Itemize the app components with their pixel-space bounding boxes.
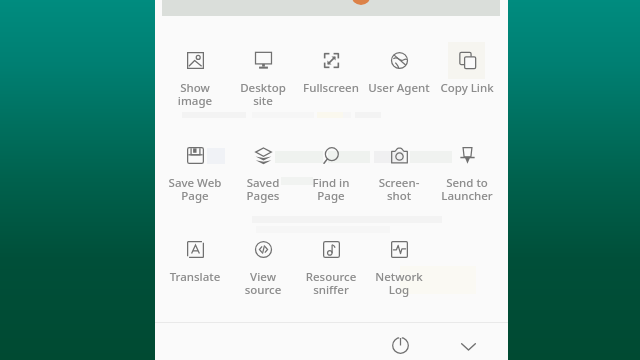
- staticText: Find in Page: [298, 175, 364, 204]
- button[interactable]: User Agent: [366, 42, 432, 96]
- button[interactable]: Resource sniffer: [298, 231, 364, 298]
- button[interactable]: Screen- shot: [366, 137, 432, 204]
- staticText: Network Log: [366, 269, 432, 298]
- staticText: Fullscreen: [298, 80, 364, 96]
- staticText: User Agent: [366, 80, 432, 96]
- button[interactable]: Network Log: [366, 231, 432, 298]
- button[interactable]: Show image: [162, 42, 228, 109]
- button[interactable]: Find in Page: [298, 137, 364, 204]
- staticText: Send to Launcher: [434, 175, 500, 204]
- button[interactable]: Collapse menu: [449, 327, 487, 360]
- button[interactable]: Copy Link: [434, 42, 500, 96]
- button[interactable]: Fullscreen: [298, 42, 364, 96]
- button[interactable]: View source: [230, 231, 296, 298]
- staticText: Desktop site: [230, 80, 296, 109]
- staticText: View source: [230, 269, 296, 298]
- staticText: Resource sniffer: [298, 269, 364, 298]
- staticText: Screen- shot: [366, 175, 432, 204]
- staticText: Save Web Page: [162, 175, 228, 204]
- button[interactable]: Saved Pages: [230, 137, 296, 204]
- button[interactable]: Desktop site: [230, 42, 296, 109]
- button[interactable]: Translate: [162, 231, 228, 285]
- button[interactable]: Send to Launcher: [434, 137, 500, 204]
- staticText: Show image: [162, 80, 228, 109]
- staticText: Saved Pages: [230, 175, 296, 204]
- button[interactable]: Exit browser: [381, 326, 419, 360]
- staticText: Translate: [162, 269, 228, 285]
- button[interactable]: Save Web Page: [162, 137, 228, 204]
- staticText: Copy Link: [434, 80, 500, 96]
